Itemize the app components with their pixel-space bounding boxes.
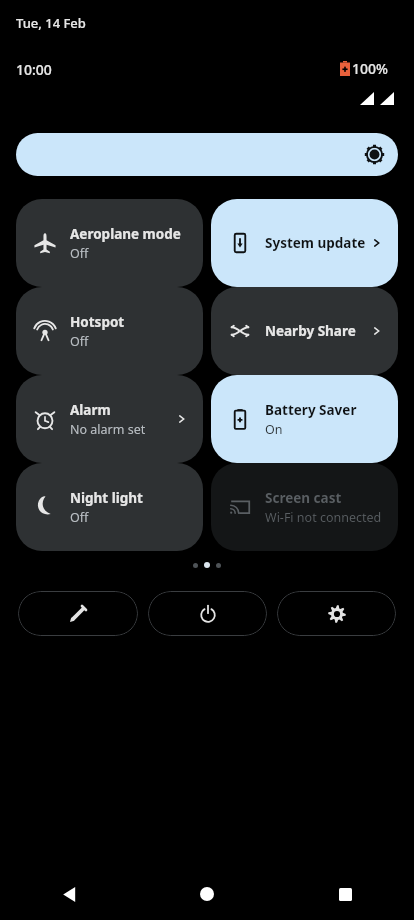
button[interactable]: Alarm — [16, 375, 203, 463]
staticText: Off — [70, 509, 89, 526]
staticText: Hotspot — [70, 313, 125, 331]
staticText: 100% — [352, 59, 388, 78]
staticText: System update — [265, 234, 366, 252]
button[interactable]: Edit tiles — [18, 591, 138, 636]
button[interactable]: Nearby Share — [211, 287, 398, 375]
button[interactable]: Screen cast — [211, 463, 398, 551]
button[interactable]: Home — [138, 868, 276, 920]
button[interactable]: Power — [148, 591, 267, 636]
staticText: Nearby Share — [265, 322, 356, 340]
staticText: Aeroplane mode — [70, 225, 181, 243]
staticText: 10:00 — [16, 60, 52, 79]
staticText: Tue, 14 Feb — [16, 14, 86, 32]
staticText: Wi-Fi not connected — [265, 509, 382, 526]
staticText: On — [265, 421, 283, 438]
staticText: Off — [70, 245, 89, 262]
button[interactable]: Night light — [16, 463, 203, 551]
button[interactable]: Recent apps — [276, 868, 414, 920]
button[interactable]: Aeroplane mode — [16, 199, 203, 287]
button[interactable]: System update — [211, 199, 398, 287]
staticText: Screen cast — [265, 489, 342, 507]
staticText: No alarm set — [70, 421, 146, 438]
staticText: Alarm — [70, 401, 111, 419]
staticText: Battery Saver — [265, 401, 357, 419]
button[interactable]: Hotspot — [16, 287, 203, 375]
button[interactable]: Settings — [277, 591, 396, 636]
button[interactable]: Brightness — [16, 133, 398, 176]
staticText: Night light — [70, 489, 143, 507]
staticText: Off — [70, 333, 89, 350]
button[interactable]: Battery Saver — [211, 375, 398, 463]
button[interactable]: Back — [0, 868, 138, 920]
